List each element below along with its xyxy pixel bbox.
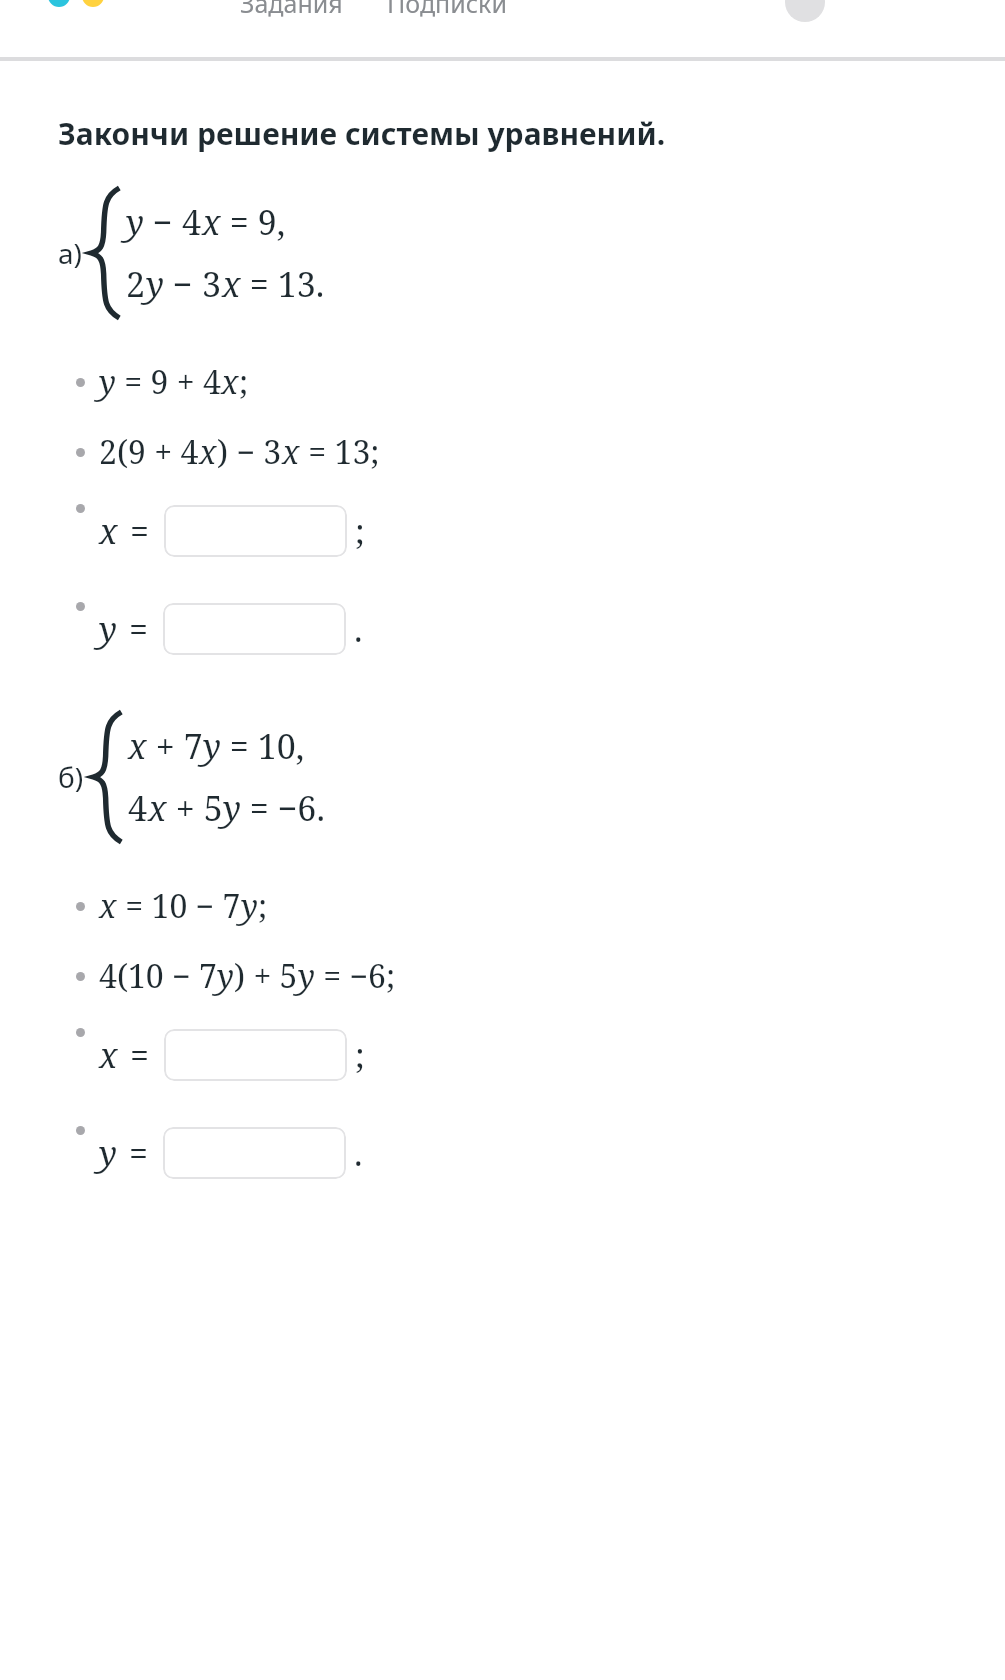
- staticText: x: [128, 723, 147, 769]
- staticText: =: [130, 508, 150, 554]
- staticText: =: [130, 1032, 150, 1078]
- staticText: y: [126, 199, 144, 245]
- staticText: 4: [182, 199, 202, 245]
- staticText: x: [222, 261, 241, 307]
- staticText: = 10 − 7: [117, 884, 241, 928]
- staticText: x: [99, 884, 117, 928]
- staticText: = 13.: [241, 261, 325, 307]
- staticText: y: [241, 884, 258, 928]
- button[interactable]: [163, 1127, 346, 1179]
- button[interactable]: [163, 603, 346, 655]
- staticText: −: [164, 261, 202, 307]
- staticText: Подписки: [387, 0, 507, 20]
- staticText: б): [58, 758, 84, 796]
- staticText: x: [282, 430, 300, 474]
- button[interactable]: Profile: [785, 0, 825, 22]
- staticText: 4(10 − 7: [99, 954, 217, 998]
- staticText: y: [99, 606, 117, 652]
- staticText: ) − 3: [217, 430, 282, 474]
- staticText: −: [144, 199, 182, 245]
- staticText: = −6.: [241, 785, 325, 831]
- staticText: а): [58, 234, 82, 272]
- staticText: ;: [239, 360, 249, 404]
- staticText: Задания: [240, 0, 343, 20]
- staticText: ;: [258, 884, 268, 928]
- staticText: 4: [128, 785, 148, 831]
- staticText: x: [221, 360, 239, 404]
- button[interactable]: Подписки: [387, 0, 507, 34]
- staticText: ;: [355, 1032, 365, 1078]
- button[interactable]: [164, 1029, 347, 1081]
- staticText: y: [203, 723, 221, 769]
- staticText: =: [129, 1130, 149, 1176]
- staticText: x: [202, 199, 221, 245]
- staticText: = 9 + 4: [116, 360, 221, 404]
- staticText: .: [354, 606, 363, 652]
- staticText: = −6;: [315, 954, 396, 998]
- staticText: y: [298, 954, 315, 998]
- staticText: x: [99, 508, 118, 554]
- staticText: ;: [355, 508, 365, 554]
- staticText: 2: [126, 261, 146, 307]
- staticText: Закончи решение системы уравнений.: [58, 113, 666, 154]
- button[interactable]: Задания: [240, 0, 387, 34]
- staticText: y: [99, 1130, 117, 1176]
- staticText: = 13;: [300, 430, 380, 474]
- staticText: x: [148, 785, 167, 831]
- staticText: = 10,: [221, 723, 305, 769]
- staticText: = 9,: [221, 199, 286, 245]
- staticText: =: [129, 606, 149, 652]
- staticText: y: [217, 954, 234, 998]
- button[interactable]: [164, 505, 347, 557]
- staticText: ) + 5: [234, 954, 298, 998]
- staticText: y: [146, 261, 164, 307]
- staticText: + 5: [167, 785, 223, 831]
- staticText: 2(9 + 4: [99, 430, 199, 474]
- staticText: y: [223, 785, 241, 831]
- staticText: 3: [202, 261, 222, 307]
- staticText: x: [99, 1032, 118, 1078]
- staticText: x: [199, 430, 217, 474]
- staticText: + 7: [147, 723, 203, 769]
- staticText: y: [99, 360, 116, 404]
- staticText: .: [354, 1130, 363, 1176]
